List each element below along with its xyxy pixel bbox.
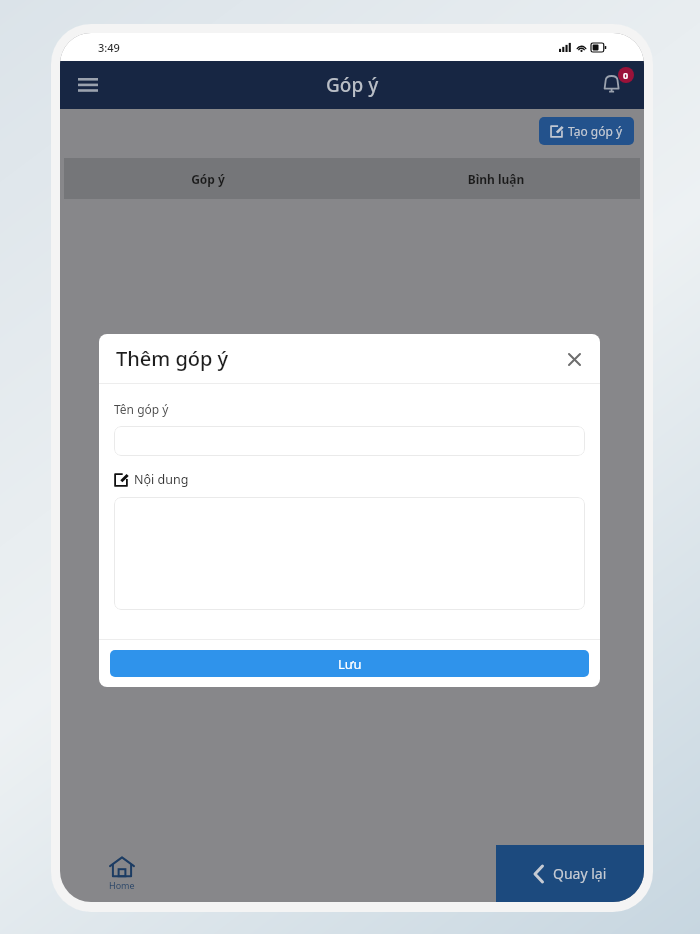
- button[interactable]: Quay lại: [496, 845, 644, 902]
- staticText: 0: [623, 69, 629, 81]
- staticText: 3:49: [98, 40, 120, 55]
- button[interactable]: Close: [560, 345, 588, 373]
- staticText: Nội dung: [134, 471, 189, 488]
- button[interactable]: [114, 497, 585, 610]
- staticText: Bình luận: [352, 171, 640, 187]
- staticText: Lưu: [338, 655, 362, 673]
- staticText: Góp ý: [326, 72, 379, 98]
- staticText: Tạo góp ý: [568, 123, 623, 139]
- staticText: Thêm góp ý: [116, 345, 229, 372]
- staticText: Home: [109, 879, 135, 891]
- staticText: Tên góp ý: [114, 401, 169, 417]
- button[interactable]: Notifications: [592, 63, 636, 107]
- button[interactable]: Tạo góp ý: [539, 117, 634, 145]
- button[interactable]: Lưu: [110, 650, 589, 677]
- button[interactable]: Menu: [66, 63, 110, 107]
- button[interactable]: [114, 426, 585, 456]
- staticText: Quay lại: [553, 864, 607, 883]
- button[interactable]: Home: [105, 852, 139, 895]
- staticText: Góp ý: [64, 171, 352, 187]
